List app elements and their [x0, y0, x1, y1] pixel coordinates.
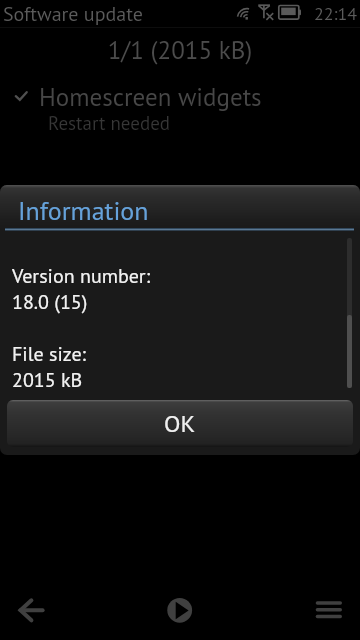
- staticText: Version number:: [12, 263, 151, 289]
- staticText: Software update: [3, 1, 143, 25]
- button[interactable]: OK: [7, 400, 353, 447]
- staticText: 1/1 (2015 kB): [0, 34, 360, 66]
- button[interactable]: Play: [156, 586, 204, 634]
- button[interactable]: Menu: [305, 586, 353, 634]
- staticText: Homescreen widgets: [39, 81, 262, 113]
- staticText: Information: [18, 194, 149, 228]
- staticText: Restart needed: [48, 111, 171, 136]
- staticText: 18.0 (15): [12, 289, 88, 315]
- staticText: File size:: [12, 341, 86, 367]
- button[interactable]: Back: [7, 586, 55, 634]
- staticText: 22:14: [314, 2, 358, 25]
- staticText: 2015 kB: [12, 367, 83, 393]
- staticText: OK: [164, 408, 196, 439]
